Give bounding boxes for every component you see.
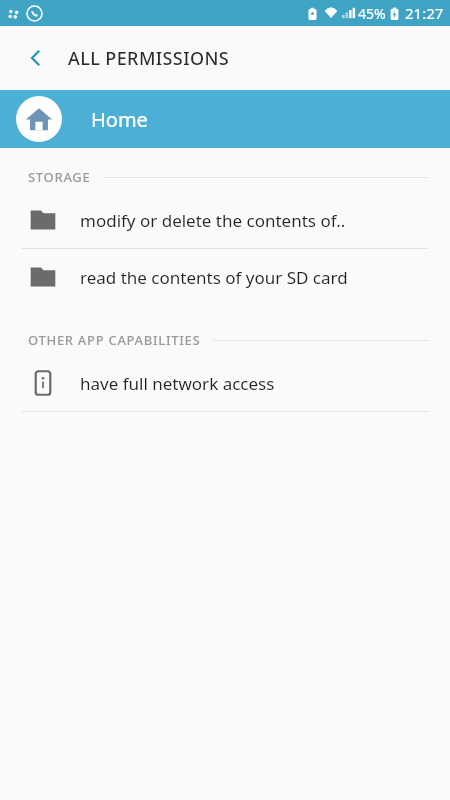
staticText: STORAGE [28,168,91,186]
button[interactable]: Back [14,36,58,80]
staticText: 45% [358,4,386,23]
staticText: have full network access [80,372,275,395]
staticText: Home [91,106,148,133]
button[interactable]: have full network access [0,355,450,411]
button[interactable]: Home [0,90,450,148]
staticText: modify or delete the contents of.. [80,209,346,232]
button[interactable]: modify or delete the contents of.. [0,192,450,248]
staticText: ALL PERMISSIONS [68,46,230,71]
staticText: read the contents of your SD card [80,266,348,289]
staticText: OTHER APP CAPABILITIES [28,331,201,349]
button[interactable]: read the contents of your SD card [0,249,450,305]
staticText: 21:27 [405,3,444,23]
